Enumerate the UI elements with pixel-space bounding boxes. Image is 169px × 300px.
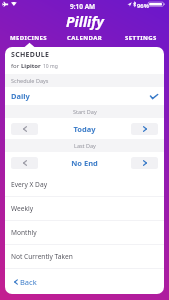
- staticText: SETTINGS: [125, 34, 157, 42]
- button[interactable]: Previous: [11, 157, 38, 169]
- staticText: Back: [20, 277, 37, 287]
- staticText: 10 mg: [43, 63, 58, 70]
- staticText: Monthly: [11, 228, 37, 237]
- staticText: CALENDAR: [67, 34, 103, 42]
- button[interactable]: Next: [131, 157, 158, 169]
- button[interactable]: Weekly: [5, 197, 164, 220]
- staticText: Pillify: [66, 12, 104, 31]
- staticText: No End: [71, 158, 98, 168]
- staticText: Start Day: [73, 108, 97, 115]
- button[interactable]: MEDICINES: [0, 34, 57, 45]
- button[interactable]: Monthly: [5, 221, 164, 244]
- button[interactable]: Back: [11, 275, 39, 289]
- staticText: 9:10 AM: [70, 2, 96, 11]
- staticText: SCHEDULE: [11, 50, 50, 60]
- staticText: Weekly: [11, 204, 34, 213]
- staticText: Every X Day: [11, 180, 47, 189]
- button[interactable]: Previous: [11, 123, 38, 135]
- button[interactable]: Every X Day: [5, 173, 164, 196]
- staticText: Today: [73, 124, 96, 134]
- button[interactable]: Not Currently Taken: [5, 245, 164, 268]
- staticText: Lipitor: [21, 62, 41, 70]
- staticText: MEDICINES: [10, 34, 48, 42]
- staticText: Not Currently Taken: [11, 252, 73, 261]
- staticText: 96%: [137, 2, 149, 10]
- staticText: Daily: [11, 91, 30, 101]
- button[interactable]: Daily: [5, 87, 164, 105]
- staticText: Schedule Days: [11, 77, 49, 84]
- button[interactable]: Next: [131, 123, 158, 135]
- staticText: for: [11, 62, 21, 70]
- button[interactable]: CALENDAR: [57, 34, 113, 45]
- staticText: Last Day: [74, 142, 96, 149]
- button[interactable]: SETTINGS: [113, 34, 169, 45]
